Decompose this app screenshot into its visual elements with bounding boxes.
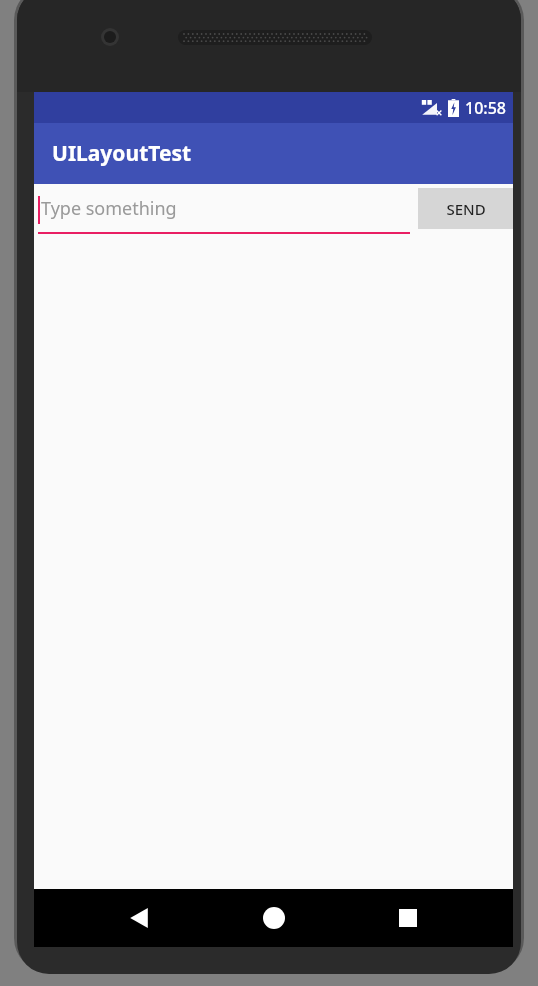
button[interactable]: Home	[244, 889, 304, 947]
staticText: Type something	[41, 196, 177, 221]
button[interactable]: Back	[109, 889, 169, 947]
staticText: UILayoutTest	[52, 139, 192, 168]
button[interactable]: Type something	[34, 187, 410, 234]
staticText: 10:58	[465, 97, 506, 119]
button[interactable]: Recent apps	[378, 889, 438, 947]
staticText: SEND	[446, 199, 486, 219]
button[interactable]: SEND	[418, 188, 513, 229]
